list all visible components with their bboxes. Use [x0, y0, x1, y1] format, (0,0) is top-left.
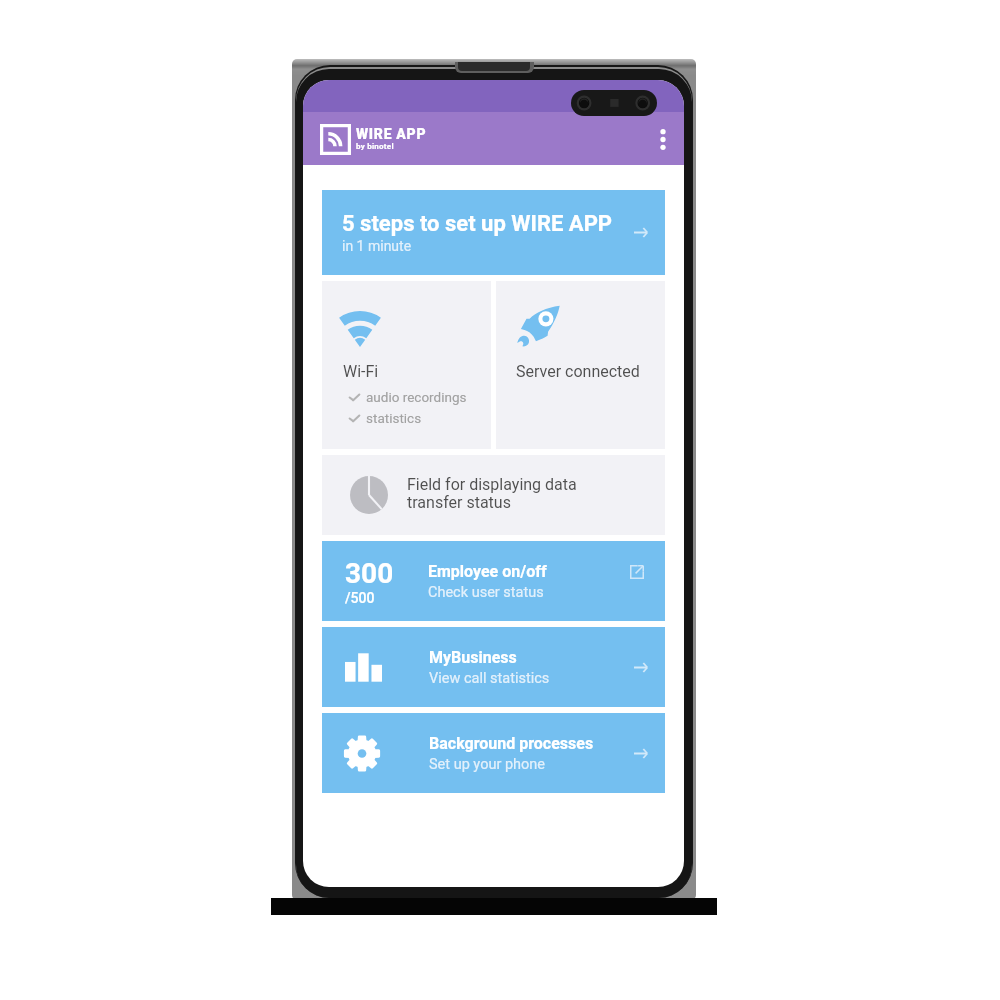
- staticText: 5 steps to set up WIRE APP: [342, 211, 613, 237]
- button[interactable]: 5 steps to set up WIRE APP: [322, 190, 665, 275]
- staticText: Background processes: [429, 734, 594, 753]
- staticText: Wi-Fi: [343, 362, 379, 381]
- staticText: 300: [345, 557, 394, 590]
- staticText: /500: [345, 590, 375, 606]
- button[interactable]: More options: [651, 119, 675, 159]
- button[interactable]: MyBusiness: [322, 627, 665, 707]
- staticText: by binotel: [356, 142, 394, 151]
- staticText: WIRE APP: [356, 126, 427, 142]
- button[interactable]: Wi-Fi: [322, 281, 491, 449]
- staticText: View call statistics: [429, 670, 550, 687]
- staticText: Set up your phone: [429, 756, 545, 773]
- staticText: in 1 minute: [342, 238, 412, 254]
- staticText: audio recordings: [366, 389, 467, 405]
- staticText: Employee on/off: [428, 562, 547, 581]
- button[interactable]: Server connected: [496, 281, 665, 449]
- staticText: statistics: [366, 410, 422, 426]
- staticText: Field for displaying data transfer statu…: [407, 475, 577, 512]
- other: Open employee list: [630, 565, 644, 579]
- staticText: Server connected: [516, 362, 640, 381]
- button[interactable]: Background processes: [322, 713, 665, 793]
- button[interactable]: Field for displaying data transfer statu…: [322, 455, 665, 535]
- staticText: Check user status: [428, 584, 544, 601]
- staticText: MyBusiness: [429, 648, 517, 667]
- button[interactable]: 300: [322, 541, 665, 621]
